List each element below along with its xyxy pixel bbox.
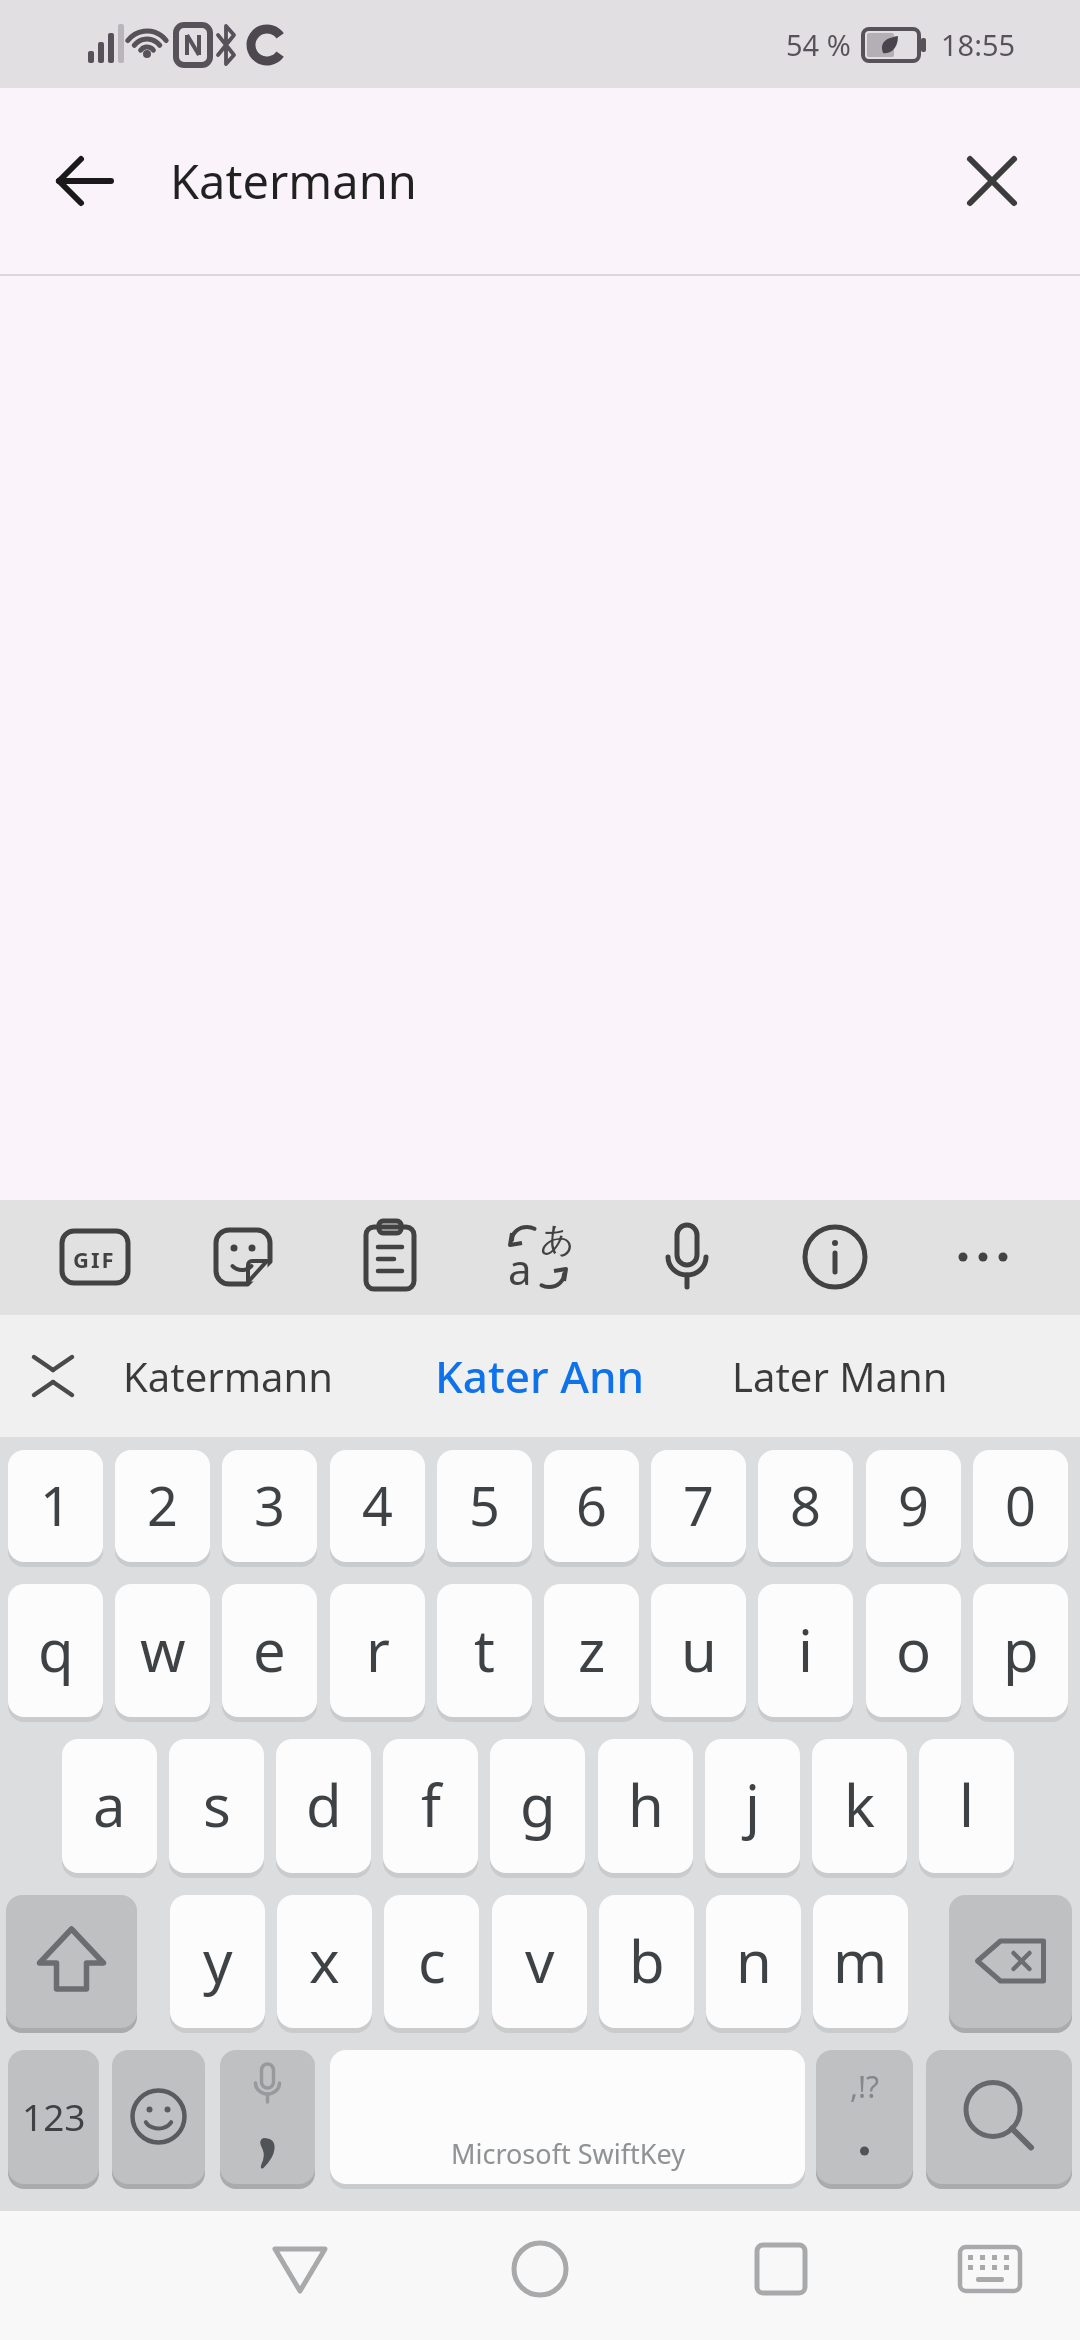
button[interactable]: s xyxy=(169,1739,264,1878)
button[interactable]: 6 xyxy=(544,1450,639,1567)
button[interactable]: f xyxy=(383,1739,478,1878)
button[interactable]: e xyxy=(222,1584,317,1722)
staticText: d xyxy=(306,1765,342,1844)
staticText: 8 xyxy=(790,1468,821,1542)
button[interactable]: r xyxy=(330,1584,425,1722)
staticText: 18:55 xyxy=(941,25,1016,64)
button[interactable]: y xyxy=(170,1895,265,2033)
button[interactable]: o xyxy=(866,1584,961,1722)
staticText: x xyxy=(309,1921,340,2000)
staticText: 9 xyxy=(898,1468,929,1542)
staticText: c xyxy=(418,1921,446,2000)
staticText: a xyxy=(93,1765,126,1844)
staticText: y xyxy=(203,1921,233,2000)
button[interactable]: g xyxy=(490,1739,585,1878)
staticText: s xyxy=(203,1765,231,1844)
button[interactable] xyxy=(112,2050,205,2189)
button[interactable] xyxy=(52,148,118,214)
button[interactable]: n xyxy=(706,1895,801,2033)
button[interactable]: h xyxy=(598,1739,693,1878)
button[interactable] xyxy=(220,2050,315,2189)
staticText: ,!? xyxy=(850,2066,880,2107)
staticText: m xyxy=(833,1921,888,2000)
staticText: 3 xyxy=(254,1468,285,1542)
staticText: 6 xyxy=(576,1468,607,1542)
staticText: あ xyxy=(540,1218,575,1261)
button[interactable] xyxy=(816,2050,913,2189)
button[interactable] xyxy=(250,2226,350,2326)
staticText: 1 xyxy=(40,1468,71,1542)
staticText: 4 xyxy=(362,1468,393,1542)
button[interactable]: x xyxy=(277,1895,372,2033)
button[interactable]: w xyxy=(115,1584,210,1722)
staticText: f xyxy=(421,1765,441,1844)
staticText: h xyxy=(628,1765,664,1844)
button[interactable]: 4 xyxy=(330,1450,425,1567)
staticText: Kater Ann xyxy=(435,1346,645,1406)
staticText: Microsoft SwiftKey xyxy=(451,2135,685,2172)
staticText: r xyxy=(366,1610,390,1689)
staticText: 54 % xyxy=(786,25,851,64)
staticText: GIF xyxy=(73,1244,116,1274)
staticText: 0 xyxy=(1005,1468,1036,1542)
button[interactable]: 2 xyxy=(115,1450,210,1567)
button[interactable]: 123 xyxy=(8,2050,99,2189)
button[interactable] xyxy=(962,151,1022,211)
button[interactable]: 0 xyxy=(973,1450,1068,1567)
staticText: 123 xyxy=(22,2091,86,2141)
staticText: Katermann xyxy=(170,149,417,213)
button[interactable]: k xyxy=(812,1739,907,1878)
staticText: k xyxy=(844,1765,875,1844)
button[interactable]: j xyxy=(705,1739,800,1878)
button[interactable]: 7 xyxy=(651,1450,746,1567)
staticText: Later Mann xyxy=(732,1349,948,1403)
staticText: e xyxy=(253,1610,286,1689)
staticText: a xyxy=(508,1240,532,1297)
staticText: w xyxy=(140,1610,186,1689)
button[interactable]: l xyxy=(919,1739,1014,1878)
staticText: g xyxy=(520,1765,556,1844)
staticText: u xyxy=(681,1610,717,1689)
button[interactable] xyxy=(330,2050,805,2189)
button[interactable]: z xyxy=(544,1584,639,1722)
button[interactable]: b xyxy=(599,1895,694,2033)
staticText: Katermann xyxy=(123,1349,333,1403)
button[interactable]: Katermann xyxy=(68,1315,388,1437)
button[interactable] xyxy=(6,1895,137,2033)
button[interactable]: i xyxy=(758,1584,853,1722)
button[interactable]: d xyxy=(276,1739,371,1878)
button[interactable]: v xyxy=(492,1895,587,2033)
button[interactable]: q xyxy=(8,1584,103,1722)
button[interactable] xyxy=(926,2050,1072,2189)
staticText: b xyxy=(629,1921,665,2000)
staticText: p xyxy=(1003,1610,1039,1689)
button[interactable] xyxy=(490,2226,590,2326)
staticText: 7 xyxy=(683,1468,714,1542)
staticText: i xyxy=(798,1610,813,1689)
staticText: v xyxy=(525,1921,555,2000)
staticText: 5 xyxy=(469,1468,500,1542)
staticText: n xyxy=(736,1921,772,2000)
staticText: 2 xyxy=(147,1468,178,1542)
staticText: t xyxy=(474,1610,495,1689)
button[interactable]: m xyxy=(813,1895,908,2033)
staticText: z xyxy=(578,1610,606,1689)
staticText: j xyxy=(745,1765,760,1844)
staticText: q xyxy=(38,1610,74,1689)
button[interactable]: Later Mann xyxy=(680,1315,1000,1437)
button[interactable]: 5 xyxy=(437,1450,532,1567)
button[interactable]: 8 xyxy=(758,1450,853,1567)
button[interactable]: 3 xyxy=(222,1450,317,1567)
button[interactable]: 1 xyxy=(8,1450,103,1567)
button[interactable]: Kater Ann xyxy=(390,1315,690,1437)
button[interactable]: c xyxy=(384,1895,479,2033)
button[interactable] xyxy=(949,1895,1072,2033)
button[interactable]: 9 xyxy=(866,1450,961,1567)
button[interactable] xyxy=(730,2226,830,2326)
button[interactable]: a xyxy=(62,1739,157,1878)
button[interactable]: p xyxy=(973,1584,1068,1722)
staticText: o xyxy=(896,1610,932,1689)
staticText: l xyxy=(959,1765,974,1844)
button[interactable]: t xyxy=(437,1584,532,1722)
button[interactable]: u xyxy=(651,1584,746,1722)
